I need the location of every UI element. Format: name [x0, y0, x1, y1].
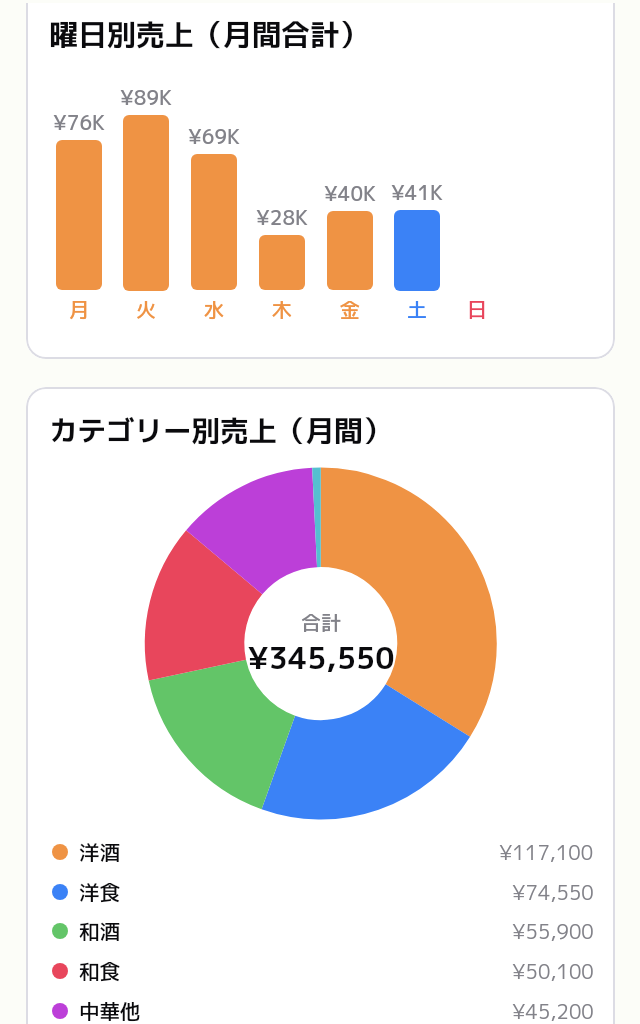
staticText: 木 [262, 295, 302, 323]
button[interactable]: 和食 [43, 951, 594, 991]
staticText: 土 [397, 295, 437, 323]
staticText: ¥74,550 [512, 878, 594, 906]
staticText: 日 [457, 295, 497, 323]
staticText: ¥76K [39, 108, 119, 136]
staticText: ¥40K [310, 179, 390, 207]
staticText: ¥28K [242, 203, 322, 231]
staticText: 月 [59, 295, 99, 323]
button[interactable]: 洋食 [43, 872, 594, 912]
button[interactable]: 中華他 [43, 991, 594, 1024]
staticText: 和酒 [79, 917, 120, 945]
staticText: 水 [194, 295, 234, 323]
staticText: ¥41K [377, 178, 457, 206]
staticText: 和食 [79, 957, 120, 985]
staticText: 中華他 [79, 997, 141, 1024]
staticText: ¥69K [174, 122, 254, 150]
staticText: 合計 [261, 608, 381, 636]
staticText: ¥50,100 [512, 957, 594, 985]
staticText: ¥55,900 [512, 917, 594, 945]
button[interactable]: 洋酒 [43, 832, 594, 872]
staticText: 洋酒 [79, 838, 120, 866]
staticText: カテゴリー別売上（月間） [49, 410, 392, 450]
staticText: 金 [330, 295, 370, 323]
staticText: ¥89K [106, 83, 186, 111]
staticText: ¥45,200 [512, 997, 594, 1024]
button[interactable]: 和酒 [43, 911, 594, 951]
staticText: 曜日別売上（月間合計） [49, 14, 369, 54]
staticText: ¥117,100 [499, 838, 594, 866]
staticText: 火 [126, 295, 166, 323]
staticText: ¥345,550 [211, 637, 431, 679]
staticText: 洋食 [79, 878, 120, 906]
